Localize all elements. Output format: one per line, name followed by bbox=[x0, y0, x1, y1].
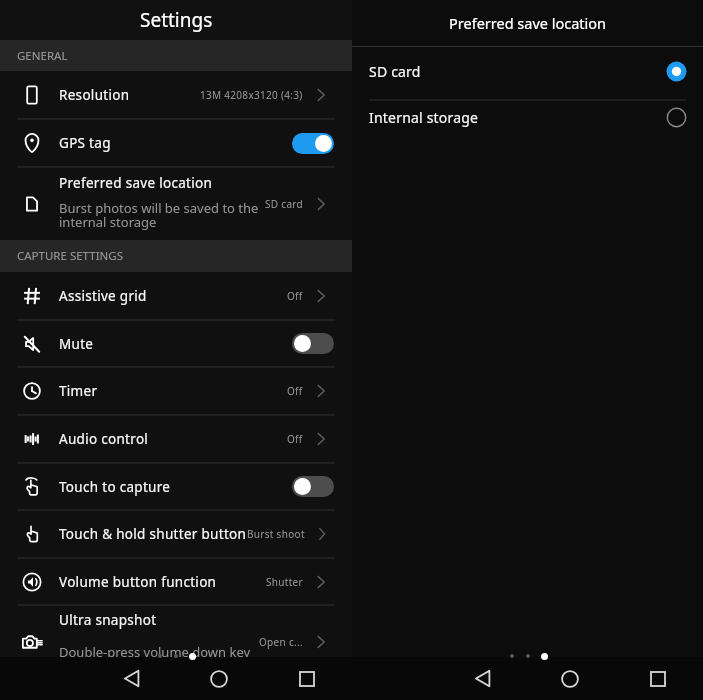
staticText: Off bbox=[287, 289, 303, 303]
staticText: Off bbox=[287, 384, 303, 398]
staticText: CAPTURE SETTINGS bbox=[17, 248, 123, 264]
button[interactable]: Toggle on bbox=[292, 133, 334, 154]
button[interactable]: SD card bbox=[352, 47, 703, 100]
staticText: GPS tag bbox=[59, 134, 111, 152]
button[interactable]: Preferred save location bbox=[0, 167, 352, 240]
button[interactable]: Toggle off bbox=[292, 476, 334, 497]
button[interactable]: Resolution bbox=[0, 71, 352, 119]
staticText: Internal storage bbox=[369, 108, 479, 127]
button[interactable]: Recent apps bbox=[262, 657, 352, 700]
button[interactable]: Mute bbox=[0, 320, 352, 367]
button[interactable]: Assistive grid bbox=[0, 272, 352, 320]
staticText: Resolution bbox=[59, 86, 130, 104]
staticText: Settings bbox=[140, 7, 213, 33]
button[interactable]: Volume button function bbox=[0, 558, 352, 605]
button[interactable]: Internal storage bbox=[352, 100, 703, 147]
button[interactable]: Home bbox=[526, 657, 613, 700]
staticText: Ultra snapshot bbox=[59, 611, 157, 629]
staticText: Double-press volume down key bbox=[59, 643, 251, 661]
staticText: Preferred save location bbox=[449, 13, 607, 33]
button[interactable]: Touch & hold shutter button bbox=[0, 510, 352, 558]
button[interactable]: Toggle off bbox=[292, 333, 334, 354]
staticText: SD card bbox=[265, 197, 303, 211]
staticText: Mute bbox=[59, 335, 94, 353]
staticText: GENERAL bbox=[17, 48, 68, 64]
button[interactable]: Touch to capture bbox=[0, 463, 352, 510]
staticText: Open c... bbox=[259, 635, 303, 649]
button[interactable]: Back bbox=[89, 657, 175, 700]
staticText: Shutter bbox=[266, 575, 303, 589]
button[interactable]: Timer bbox=[0, 367, 352, 415]
button[interactable]: Ultra snapshot bbox=[0, 605, 352, 678]
button[interactable]: Recent apps bbox=[613, 657, 703, 700]
staticText: SD card bbox=[369, 62, 421, 81]
staticText: 13M 4208x3120 (4:3) bbox=[200, 88, 303, 102]
staticText: Burst shoot bbox=[247, 527, 305, 541]
staticText: Timer bbox=[59, 382, 98, 400]
staticText: Touch & hold shutter button bbox=[59, 525, 247, 543]
button[interactable]: Audio control bbox=[0, 415, 352, 463]
staticText: Preferred save location bbox=[59, 174, 213, 192]
staticText: Burst photos will be saved to the intern… bbox=[59, 199, 259, 231]
button[interactable]: Back bbox=[440, 657, 526, 700]
staticText: Volume button function bbox=[59, 573, 217, 591]
button[interactable]: Home bbox=[175, 657, 262, 700]
staticText: Touch to capture bbox=[59, 478, 171, 496]
staticText: Audio control bbox=[59, 430, 149, 448]
button[interactable]: GPS tag bbox=[0, 119, 352, 167]
staticText: Assistive grid bbox=[59, 287, 147, 305]
staticText: Off bbox=[287, 432, 303, 446]
